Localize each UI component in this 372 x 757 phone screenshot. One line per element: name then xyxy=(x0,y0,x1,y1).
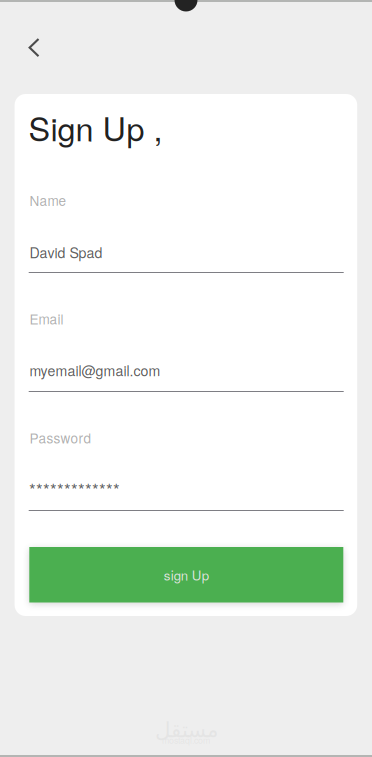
staticText: Password xyxy=(30,428,92,447)
staticText: Email xyxy=(30,309,64,328)
staticText: myemail@gmail.com xyxy=(30,360,161,380)
button[interactable]: Back xyxy=(17,31,51,65)
button[interactable]: sign Up xyxy=(29,547,343,602)
staticText: David Spad xyxy=(30,242,103,262)
staticText: ************* xyxy=(29,477,120,502)
staticText: Sign Up , xyxy=(29,104,163,150)
staticText: Name xyxy=(30,190,67,210)
staticText: مستقل xyxy=(154,717,217,742)
staticText: sign Up xyxy=(164,565,209,584)
staticText: mostaql.com xyxy=(162,734,210,746)
